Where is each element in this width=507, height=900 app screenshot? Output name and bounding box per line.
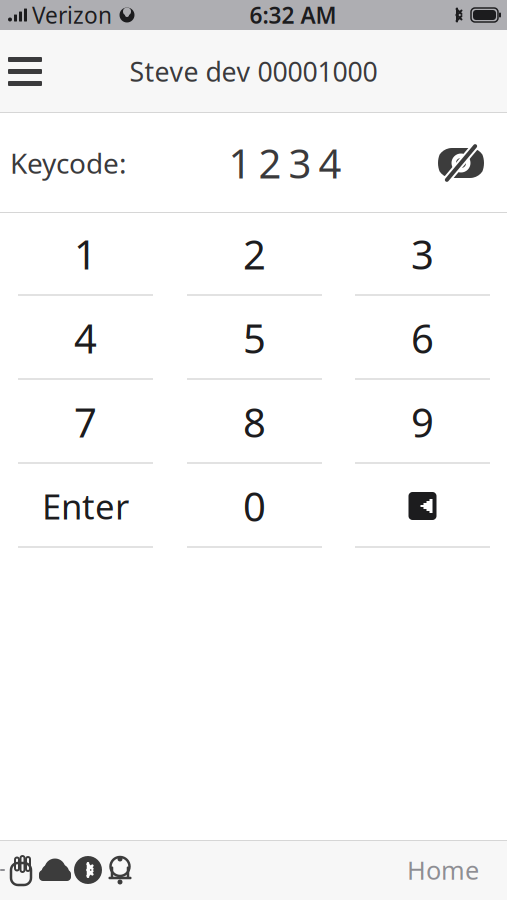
button[interactable]: Cloud [37,855,73,885]
button[interactable]: Enter [18,465,153,549]
button[interactable]: 8 [187,381,322,465]
button[interactable]: 9 [355,381,490,465]
button[interactable]: Hide keycode [433,141,507,185]
button[interactable]: 0 [187,465,322,549]
staticText: 3 [288,136,311,189]
button[interactable]: Notifications [103,854,135,886]
button[interactable]: 3 [355,213,490,297]
staticText: 3 [411,227,434,280]
button[interactable]: 2 [187,213,322,297]
button[interactable]: Bluetooth [73,855,103,885]
staticText: 0 [243,479,266,532]
button[interactable]: 4 [18,297,153,381]
staticText: 2 [243,227,266,280]
staticText: 2 [258,136,281,189]
button[interactable]: Hand [5,854,37,886]
staticText: 8 [243,395,266,448]
staticText: Home [407,853,479,887]
staticText: 4 [318,136,341,189]
staticText: 1 [228,136,251,189]
staticText: 4 [74,311,97,364]
button[interactable]: Home [407,843,507,897]
button[interactable]: 1 [18,213,153,297]
staticText: 5 [243,311,266,364]
staticText: Enter [42,483,129,529]
staticText: Verizon [32,0,112,30]
button[interactable]: 7 [18,381,153,465]
button[interactable]: Menu [0,42,56,101]
button[interactable]: Delete [355,465,490,549]
button[interactable]: 6 [355,297,490,381]
staticText: 6:32 AM [249,0,336,30]
staticText: Steve dev 00001000 [129,54,377,89]
button[interactable]: 5 [187,297,322,381]
staticText: 7 [74,395,97,448]
staticText: 1 [74,227,97,280]
staticText: Keycode: [10,144,127,182]
staticText: 6 [411,311,434,364]
staticText: 9 [411,395,434,448]
